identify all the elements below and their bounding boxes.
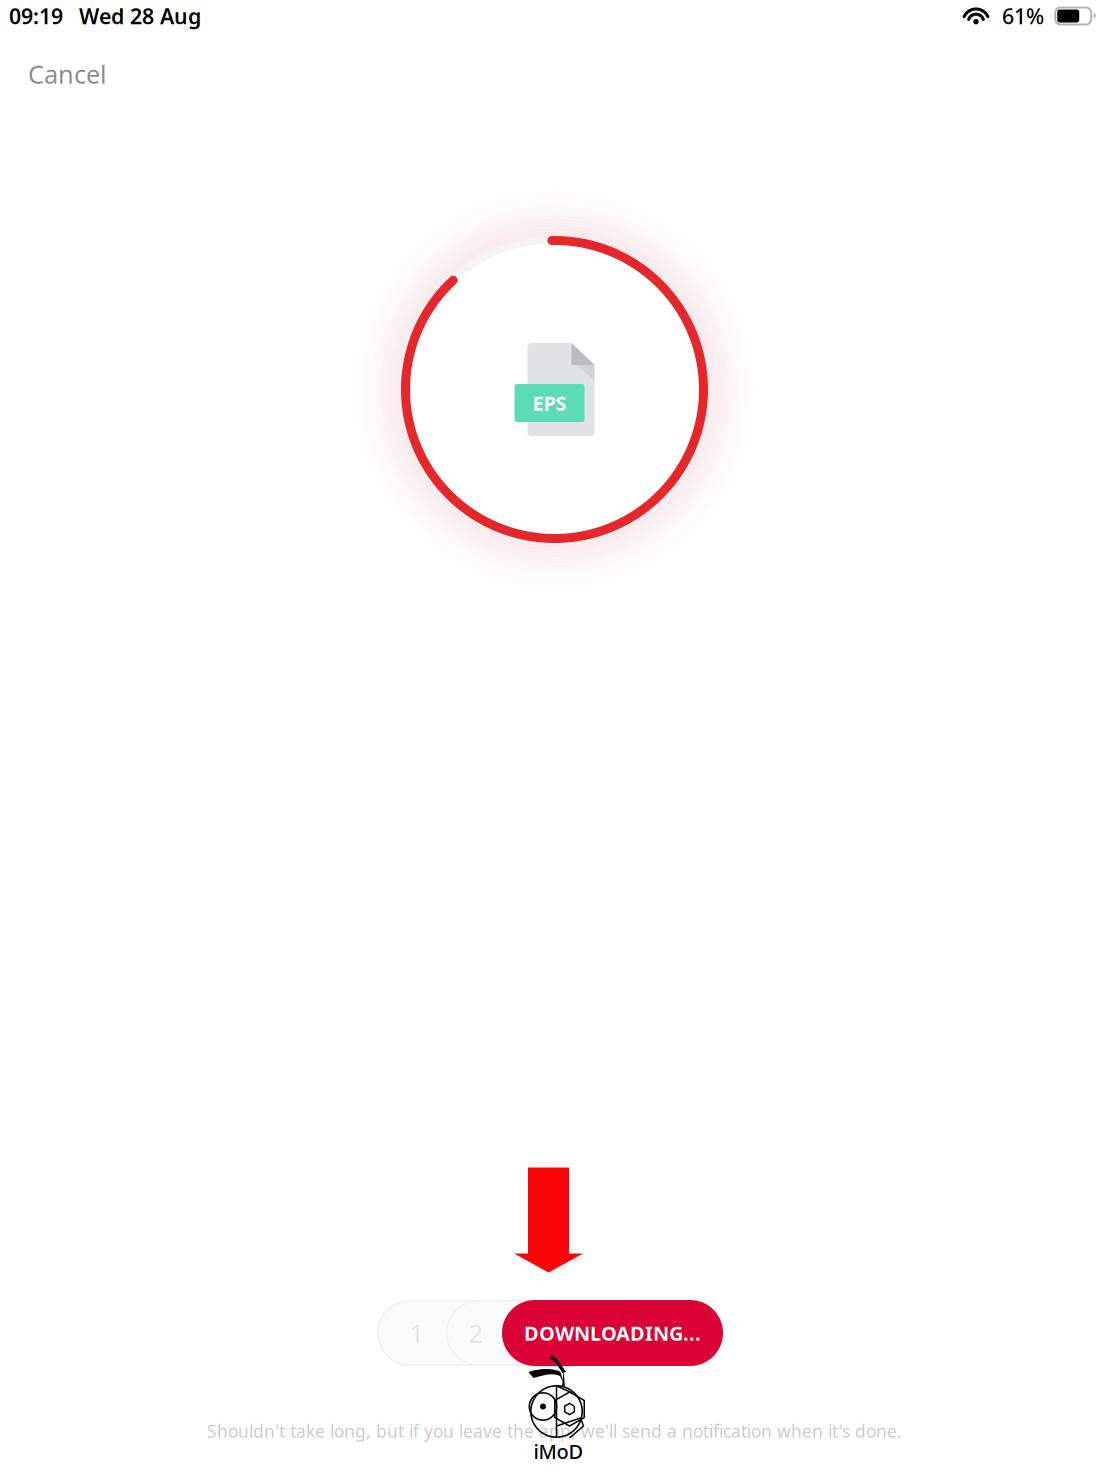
staticText: 2 bbox=[468, 1316, 482, 1350]
staticText: Shouldn't take long, but if you leave th… bbox=[207, 1419, 902, 1442]
staticText: 09:19 bbox=[9, 2, 63, 30]
staticText: 61% bbox=[1002, 2, 1044, 30]
staticText: EPS bbox=[532, 390, 566, 416]
button[interactable]: DOWNLOADING... bbox=[502, 1300, 723, 1366]
button[interactable]: 1 bbox=[377, 1300, 502, 1366]
staticText: DOWNLOADING... bbox=[524, 1320, 701, 1346]
staticText: Cancel bbox=[28, 57, 107, 91]
button[interactable]: Cancel bbox=[28, 47, 148, 101]
staticText: 1 bbox=[409, 1316, 423, 1350]
staticText: Wed 28 Aug bbox=[79, 2, 201, 30]
staticText: iMoD bbox=[533, 1438, 583, 1465]
button[interactable]: 2 bbox=[446, 1300, 571, 1366]
